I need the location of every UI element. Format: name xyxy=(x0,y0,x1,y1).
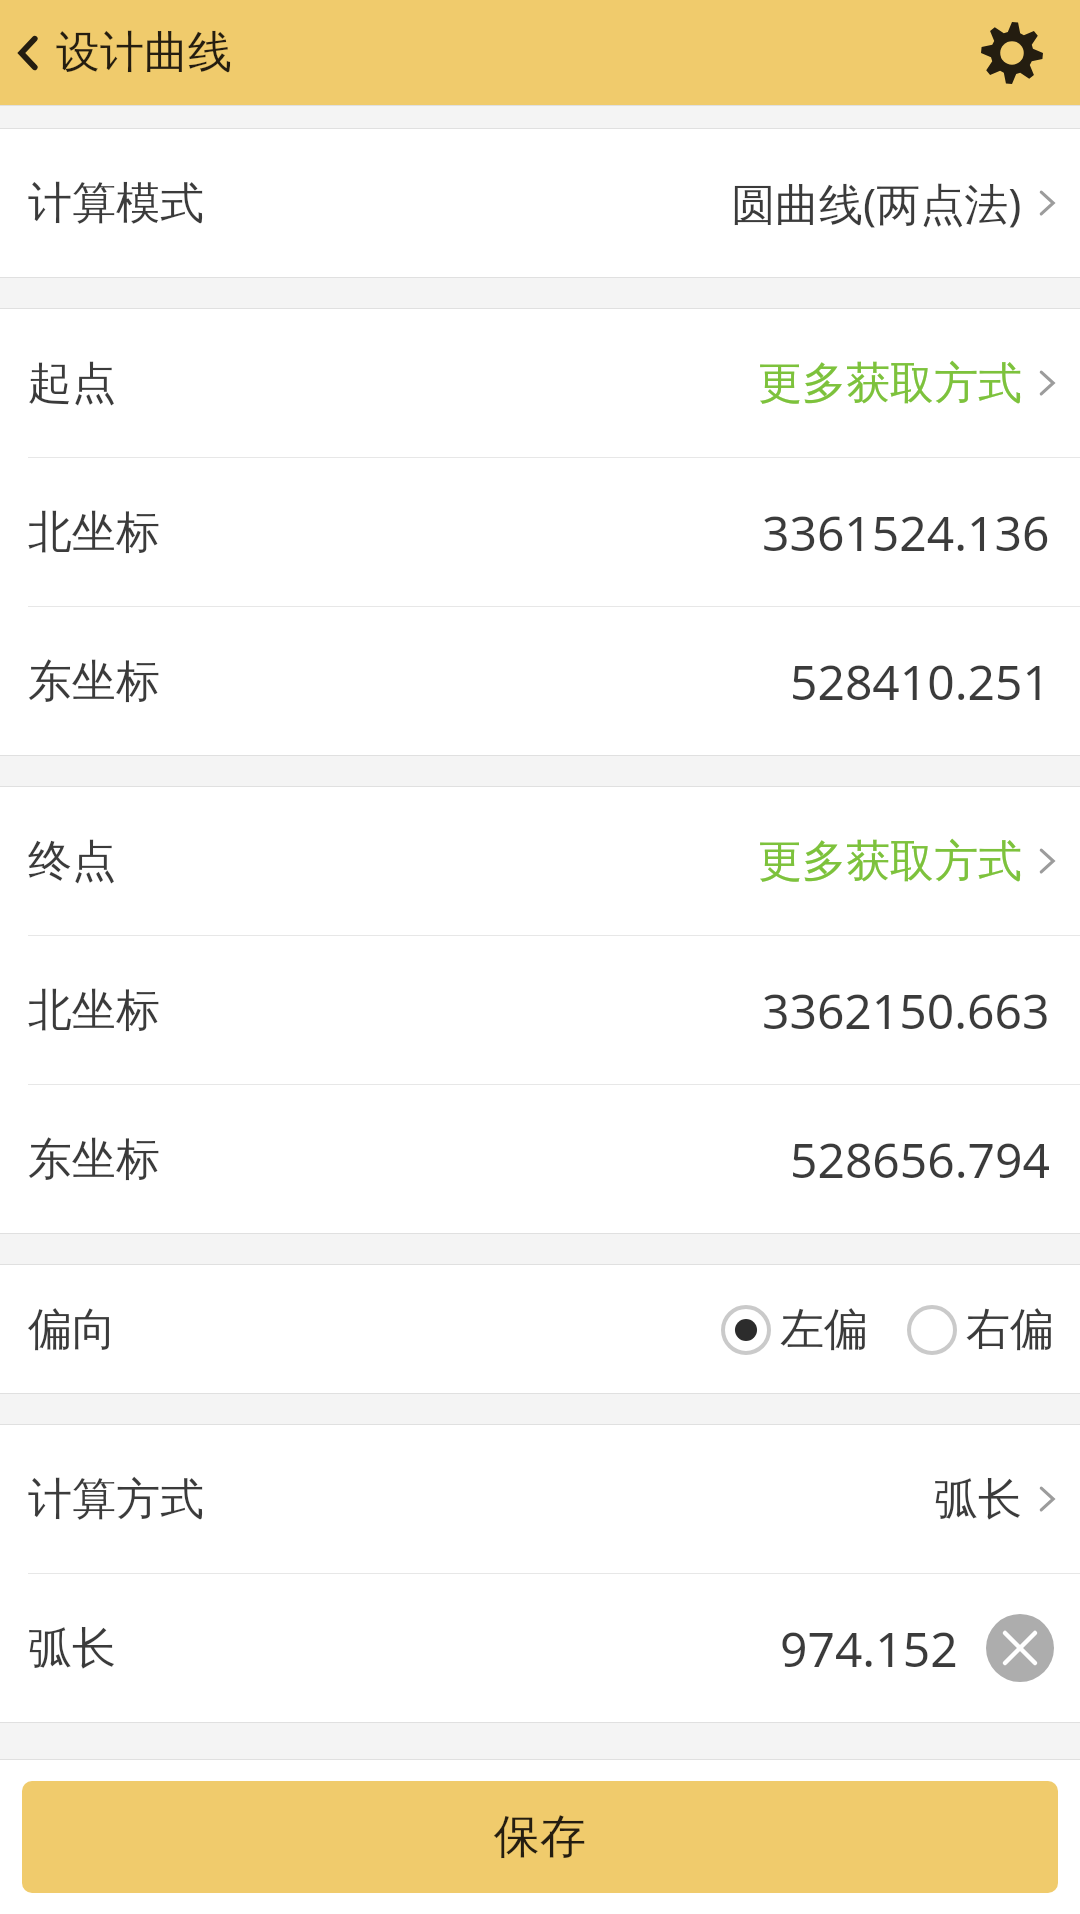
staticText: 计算方式 xyxy=(28,1472,204,1527)
button[interactable]: 北坐标 xyxy=(0,936,1080,1084)
staticText: 左偏 xyxy=(780,1302,868,1357)
staticText: 右偏 xyxy=(966,1302,1054,1357)
staticText: 保存 xyxy=(494,1808,586,1866)
staticText: 起点 xyxy=(28,356,116,411)
staticText: 圆曲线(两点法) xyxy=(731,173,1022,233)
staticText: 528410.251 xyxy=(790,649,1050,714)
button[interactable]: 保存 xyxy=(22,1781,1058,1893)
staticText: 偏向 xyxy=(28,1302,116,1357)
staticText: 3362150.663 xyxy=(762,978,1050,1043)
button[interactable]: Clear arc length xyxy=(986,1614,1054,1682)
button[interactable]: 计算方式 xyxy=(0,1425,1080,1573)
button[interactable]: 终点 xyxy=(0,787,1080,935)
staticText: 弧长 xyxy=(934,1472,1022,1527)
staticText: 设计曲线 xyxy=(56,25,232,80)
button[interactable]: 东坐标 xyxy=(0,607,1080,755)
button[interactable]: 东坐标 xyxy=(0,1085,1080,1233)
staticText: 528656.794 xyxy=(790,1127,1050,1192)
staticText: 北坐标 xyxy=(28,505,160,560)
staticText: 东坐标 xyxy=(28,654,160,709)
button[interactable]: Back xyxy=(0,13,248,92)
staticText: 弧长 xyxy=(28,1621,116,1676)
staticText: 终点 xyxy=(28,834,116,889)
button[interactable]: 北坐标 xyxy=(0,458,1080,606)
button[interactable]: 计算模式 xyxy=(0,129,1080,277)
other: Back xyxy=(16,32,40,74)
staticText: 更多获取方式 xyxy=(758,356,1022,411)
button[interactable]: 起点 xyxy=(0,309,1080,457)
staticText: 974.152 xyxy=(780,1616,958,1681)
button[interactable]: 弧长 xyxy=(0,1574,1080,1722)
staticText: 北坐标 xyxy=(28,983,160,1038)
staticText: 计算模式 xyxy=(28,176,204,231)
button[interactable]: Settings xyxy=(970,11,1054,95)
button[interactable]: 左偏 xyxy=(720,1302,868,1357)
staticText: 东坐标 xyxy=(28,1132,160,1187)
staticText: 更多获取方式 xyxy=(758,834,1022,889)
button[interactable]: 右偏 xyxy=(906,1302,1054,1357)
staticText: 3361524.136 xyxy=(762,500,1050,565)
